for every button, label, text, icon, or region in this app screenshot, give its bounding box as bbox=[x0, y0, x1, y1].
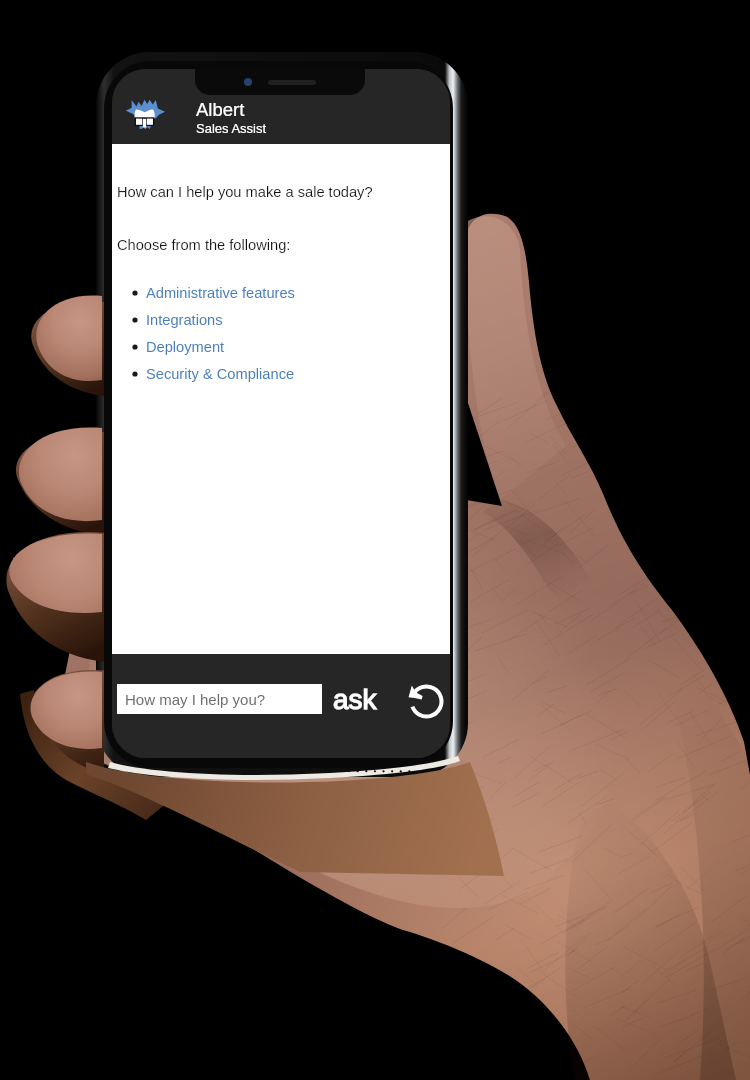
staticText: Administrative features bbox=[146, 285, 295, 301]
staticText: Albert bbox=[196, 99, 245, 120]
staticText: Deployment bbox=[146, 339, 225, 355]
staticText: ask bbox=[333, 684, 377, 715]
button[interactable]: Albert bbox=[112, 69, 450, 144]
button[interactable]: Integrations bbox=[130, 309, 223, 331]
button[interactable]: Administrative features bbox=[130, 282, 295, 304]
button[interactable]: Security & Compliance bbox=[130, 363, 295, 385]
staticText: Sales Assist bbox=[196, 121, 267, 136]
staticText: Choose from the following: bbox=[117, 237, 291, 253]
staticText: How may I help you? bbox=[125, 691, 266, 708]
button[interactable]: Reset conversation bbox=[405, 680, 447, 722]
button[interactable]: ask bbox=[333, 680, 377, 718]
button[interactable]: Deployment bbox=[130, 336, 225, 358]
staticText: How can I help you make a sale today? bbox=[117, 184, 373, 200]
button[interactable]: How may I help you? bbox=[117, 684, 322, 714]
staticText: Integrations bbox=[146, 312, 223, 328]
staticText: Security & Compliance bbox=[146, 366, 295, 382]
